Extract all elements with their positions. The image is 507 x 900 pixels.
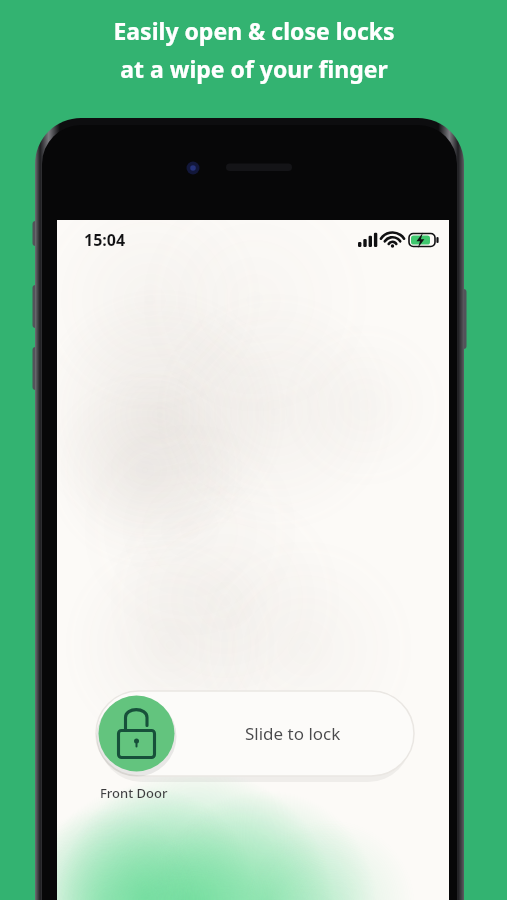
staticText: at a wipe of your finger <box>120 53 388 84</box>
staticText: Easily open & close locks <box>113 15 395 46</box>
button[interactable]: Slide to lock Front Door <box>96 691 414 776</box>
staticText: 15:04 <box>84 229 126 251</box>
staticText: Front Door <box>100 784 168 802</box>
staticText: Slide to lock <box>245 722 341 745</box>
